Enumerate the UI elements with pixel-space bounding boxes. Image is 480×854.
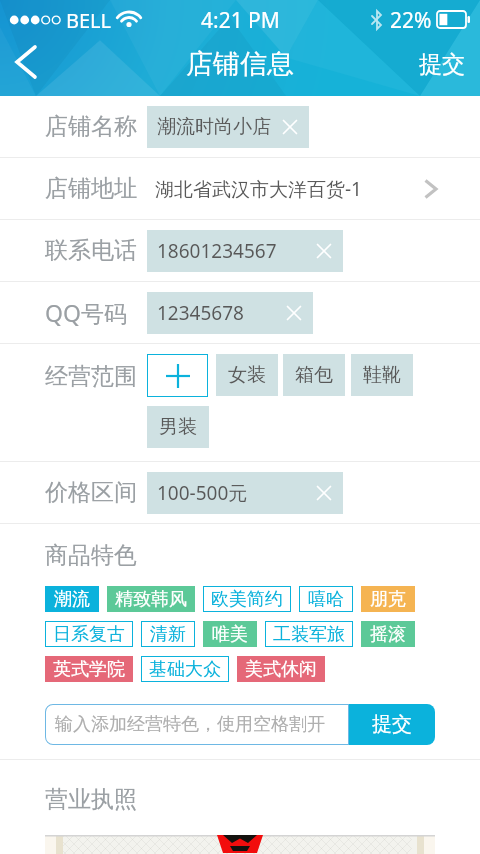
button[interactable]: 输入添加经营特色，使用空格割开	[45, 704, 349, 745]
staticText: 商品特色	[45, 541, 137, 570]
staticText: 潮流	[54, 588, 90, 611]
button[interactable]: Business license photo	[45, 835, 435, 854]
staticText: 店铺地址	[45, 174, 137, 203]
staticText: 潮流时尚小店	[157, 115, 271, 139]
button[interactable]: 100-500元	[147, 472, 343, 514]
button[interactable]: 摇滚	[361, 621, 415, 647]
staticText: 摇滚	[370, 623, 406, 646]
staticText: 女装	[228, 363, 266, 387]
button[interactable]: Back	[0, 40, 52, 90]
button[interactable]: 欧美简约	[203, 586, 291, 612]
button[interactable]: 嘻哈	[299, 586, 353, 612]
button[interactable]: 潮流	[45, 586, 99, 612]
staticText: 价格区间	[45, 478, 137, 507]
staticText: 嘻哈	[308, 588, 344, 611]
staticText: 18601234567	[157, 238, 277, 264]
staticText: 基础大众	[149, 658, 221, 681]
staticText: 联系电话	[45, 236, 137, 265]
button[interactable]: 店铺地址	[0, 158, 480, 219]
staticText: 唯美	[212, 623, 248, 646]
staticText: 鞋靴	[363, 363, 401, 387]
staticText: 男装	[159, 415, 197, 439]
button[interactable]: 唯美	[203, 621, 257, 647]
button[interactable]: 提交	[404, 40, 480, 96]
button[interactable]: 基础大众	[141, 656, 229, 682]
staticText: 精致韩风	[115, 588, 187, 611]
staticText: 店铺信息	[186, 47, 294, 81]
button[interactable]: 18601234567	[147, 230, 343, 272]
button[interactable]: 潮流时尚小店	[147, 106, 309, 148]
staticText: 22%	[390, 6, 432, 35]
staticText: 提交	[372, 712, 412, 737]
staticText: 英式学院	[53, 658, 125, 681]
staticText: 湖北省武汉市大洋百货-1	[155, 176, 362, 202]
staticText: 日系复古	[53, 623, 125, 646]
staticText: 美式休闲	[245, 658, 317, 681]
staticText: 欧美简约	[211, 588, 283, 611]
staticText: 工装军旅	[273, 623, 345, 646]
button[interactable]: 鞋靴	[351, 354, 413, 396]
button[interactable]: 女装	[216, 354, 278, 396]
button[interactable]: 提交	[349, 704, 435, 745]
staticText: BELL	[66, 7, 112, 34]
staticText: 提交	[419, 50, 465, 79]
staticText: 经营范围	[45, 362, 137, 391]
button[interactable]: Add category	[147, 354, 208, 397]
button[interactable]: 清新	[141, 621, 195, 647]
staticText: 12345678	[157, 300, 244, 326]
staticText: 箱包	[295, 363, 333, 387]
staticText: 朋克	[370, 588, 406, 611]
staticText: 店铺名称	[45, 112, 137, 141]
button[interactable]: 美式休闲	[237, 656, 325, 682]
button[interactable]: 男装	[147, 406, 209, 448]
button[interactable]: 工装军旅	[265, 621, 353, 647]
staticText: 4:21 PM	[201, 6, 280, 35]
staticText: 营业执照	[45, 785, 137, 814]
staticText: 清新	[150, 623, 186, 646]
button[interactable]: 英式学院	[45, 656, 133, 682]
button[interactable]: 日系复古	[45, 621, 133, 647]
button[interactable]: 朋克	[361, 586, 415, 612]
button[interactable]: 12345678	[147, 292, 313, 334]
button[interactable]: 精致韩风	[107, 586, 195, 612]
button[interactable]: 箱包	[283, 354, 345, 396]
staticText: 输入添加经营特色，使用空格割开	[55, 713, 325, 736]
staticText: QQ号码	[45, 297, 127, 328]
staticText: 100-500元	[157, 480, 248, 506]
